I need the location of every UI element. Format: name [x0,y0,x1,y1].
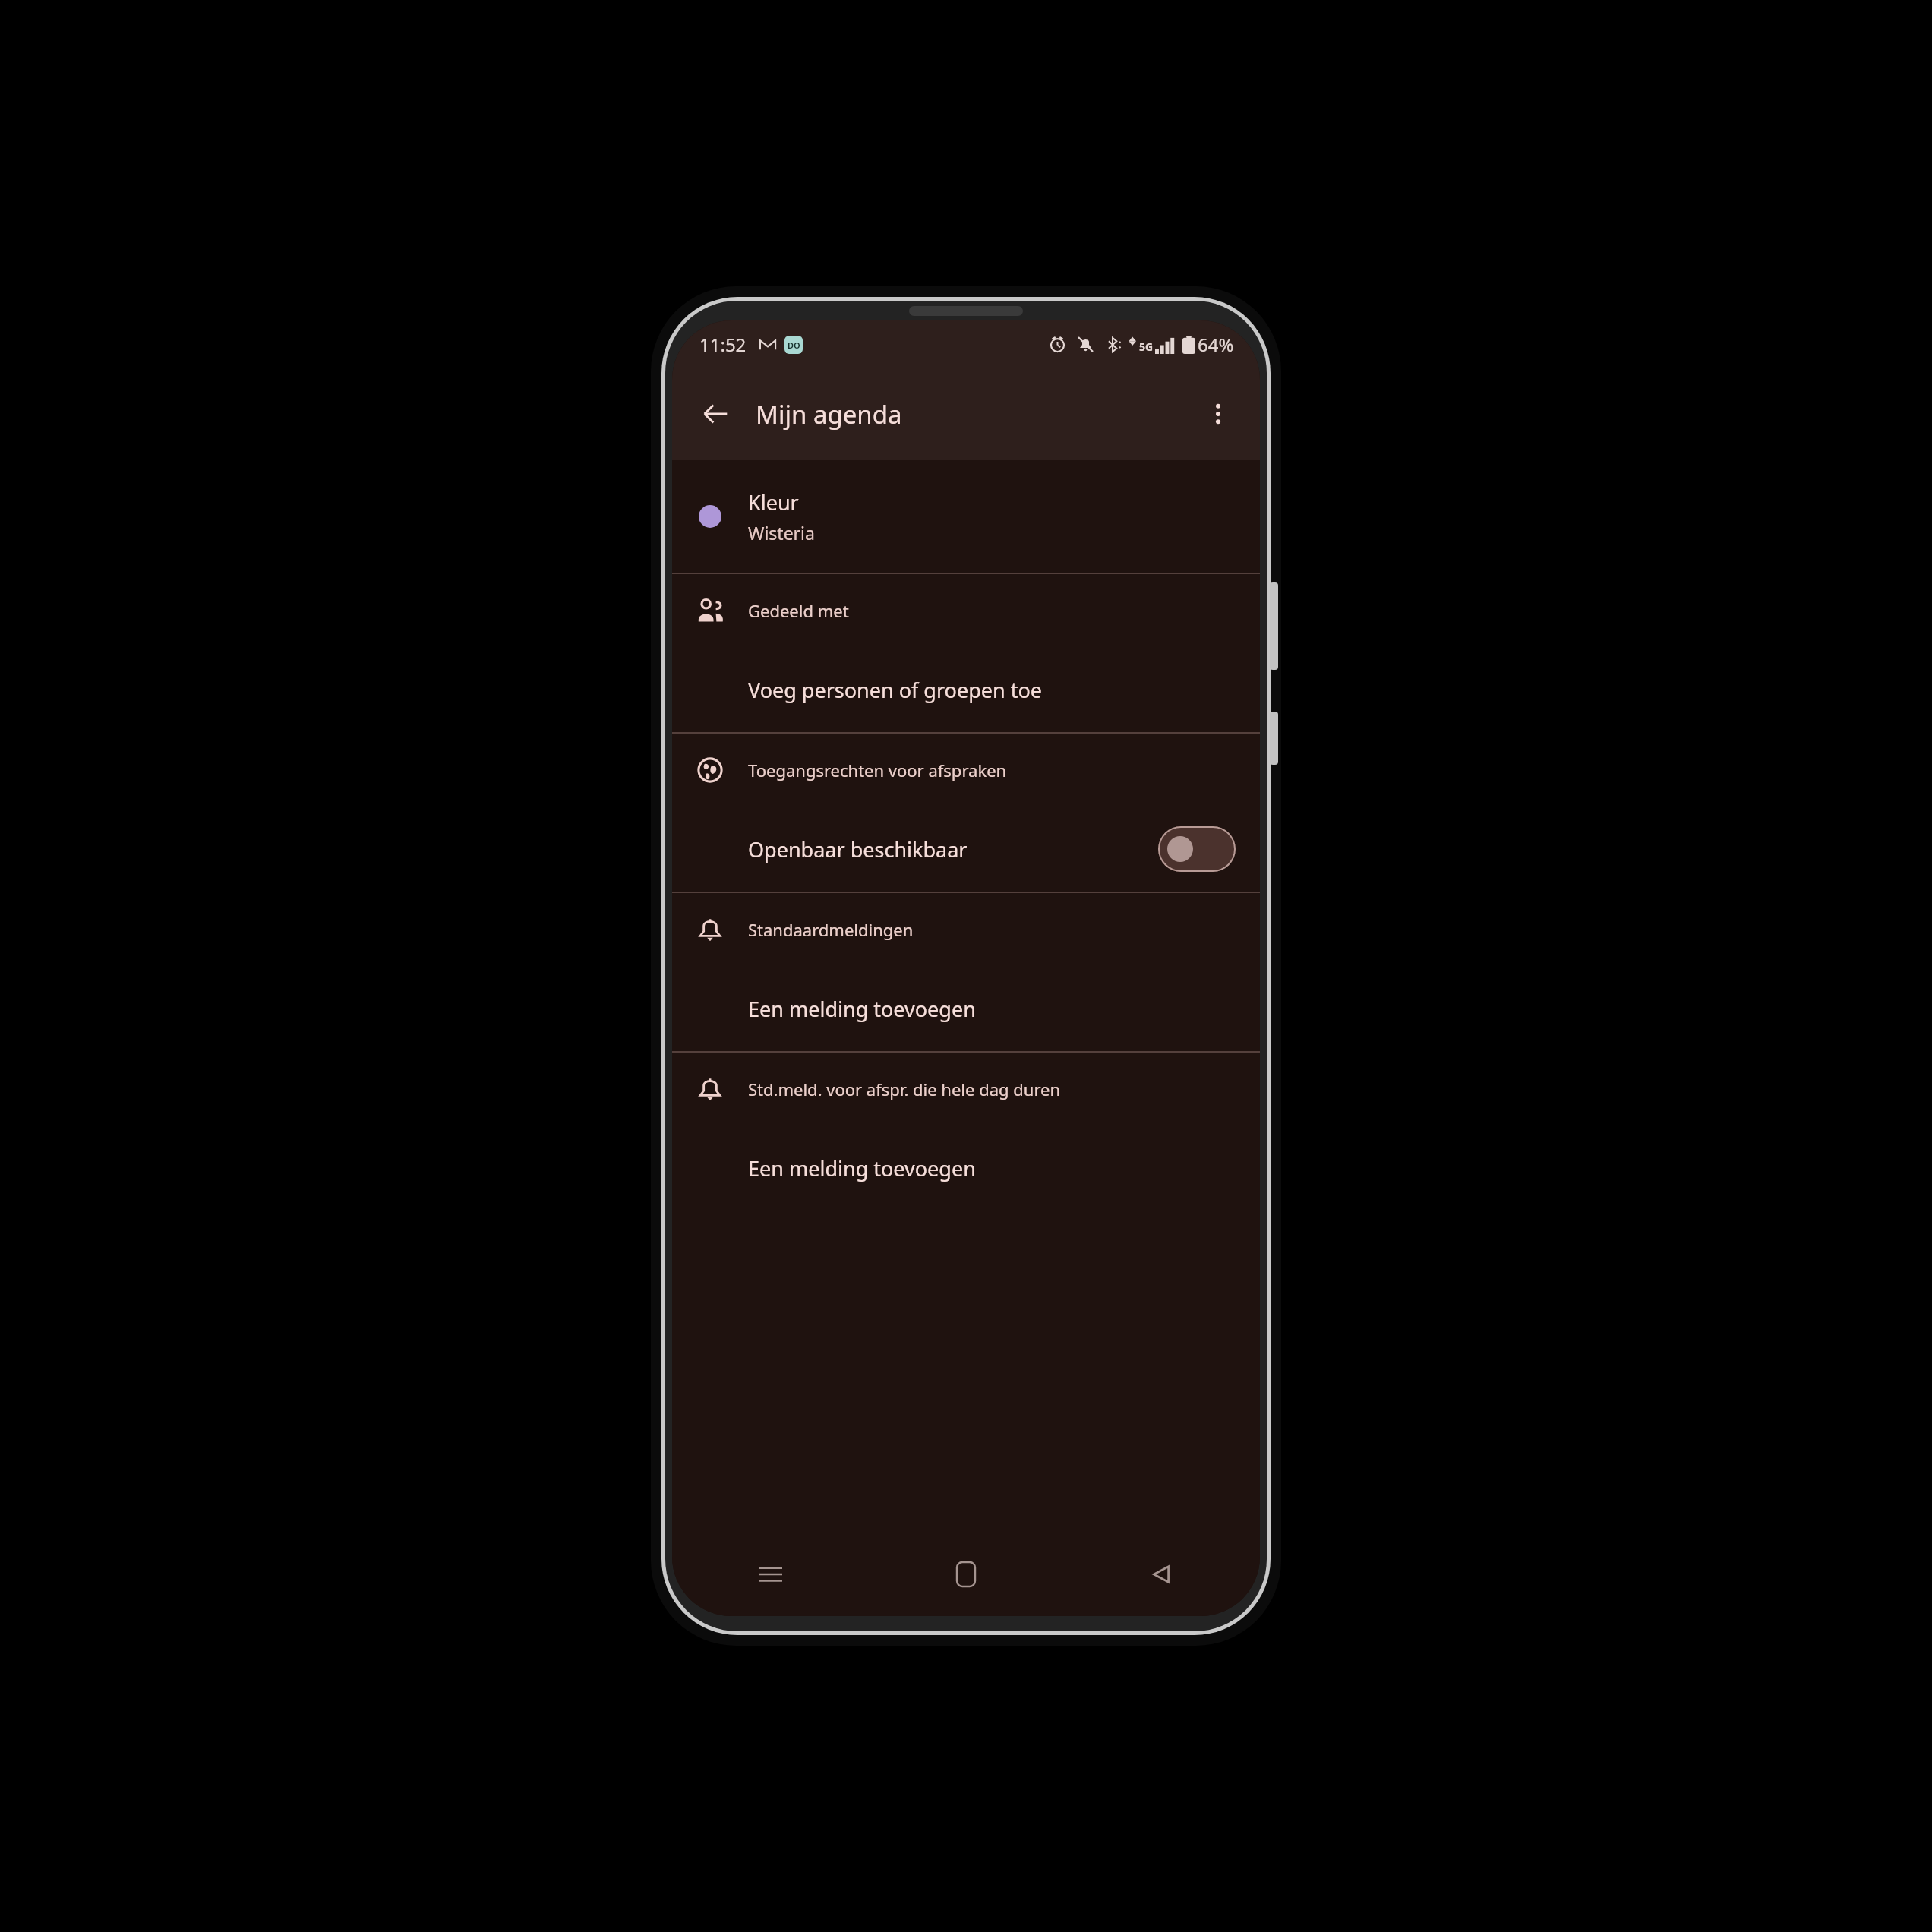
staticText: Toegangsrechten voor afspraken [748,759,1007,781]
staticText: Kleur [748,488,799,516]
staticText: Een melding toevoegen [748,1154,976,1182]
staticText: DO [788,339,800,351]
button[interactable]: Een melding toevoegen [672,1125,1260,1211]
button[interactable]: Openbaar beschikbaar toggle [1158,826,1236,872]
button[interactable]: Home [936,1544,996,1605]
button[interactable]: Openbaar beschikbaar [672,807,1260,892]
staticText: 5G [1139,339,1154,354]
button[interactable]: More options [1193,389,1243,439]
button[interactable]: Back [689,387,742,440]
staticText: 11:52 [699,332,747,357]
staticText: Std.meld. voor afspr. die hele dag duren [748,1078,1061,1100]
button[interactable]: Back [1131,1544,1192,1605]
staticText: Een melding toevoegen [748,995,976,1023]
staticText: Openbaar beschikbaar [748,835,968,863]
staticText: Wisteria [748,521,815,545]
button[interactable]: Kleur [672,460,1260,573]
staticText: 64% [1198,332,1234,357]
staticText: Mijn agenda [756,397,902,431]
button[interactable]: Een melding toevoegen [672,966,1260,1051]
button[interactable]: Recent apps [740,1544,801,1605]
button[interactable]: Voeg personen of groepen toe [672,647,1260,732]
staticText: Standaardmeldingen [748,918,914,941]
staticText: Gedeeld met [748,599,849,622]
staticText: Voeg personen of groepen toe [748,676,1042,704]
